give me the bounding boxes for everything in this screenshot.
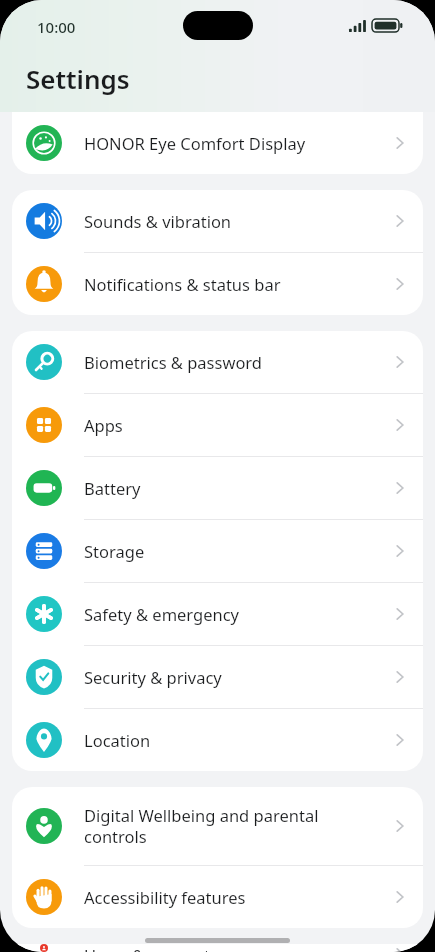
staticText: Security & privacy — [84, 666, 376, 688]
button[interactable]: Storage — [12, 520, 423, 583]
button[interactable]: Accessibility features — [12, 866, 423, 928]
staticText: HONOR Eye Comfort Display — [84, 132, 376, 154]
button[interactable]: Apps — [12, 394, 423, 457]
staticText: Battery — [84, 477, 376, 499]
staticText: Accessibility features — [84, 886, 376, 908]
staticText: Safety & emergency — [84, 603, 376, 625]
button[interactable]: Users & accounts — [12, 944, 423, 952]
staticText: Sounds & vibration — [84, 210, 376, 232]
staticText: Digital Wellbeing and parental controls — [84, 804, 376, 848]
button[interactable]: Security & privacy — [12, 646, 423, 709]
staticText: Biometrics & password — [84, 351, 376, 373]
staticText: Apps — [84, 414, 376, 436]
button[interactable]: HONOR Eye Comfort Display — [12, 112, 423, 174]
staticText: 10:00 — [37, 17, 76, 37]
button[interactable]: Digital Wellbeing and parental controls — [12, 787, 423, 866]
button[interactable]: Location — [12, 709, 423, 771]
button[interactable]: Safety & emergency — [12, 583, 423, 646]
staticText: Storage — [84, 540, 376, 562]
button[interactable]: Sounds & vibration — [12, 190, 423, 253]
staticText: Notifications & status bar — [84, 273, 376, 295]
button[interactable]: Battery — [12, 457, 423, 520]
button[interactable]: Biometrics & password — [12, 331, 423, 394]
button[interactable]: Notifications & status bar — [12, 253, 423, 315]
staticText: Location — [84, 729, 376, 751]
staticText: Users & accounts — [84, 944, 376, 952]
staticText: Settings — [26, 61, 130, 96]
